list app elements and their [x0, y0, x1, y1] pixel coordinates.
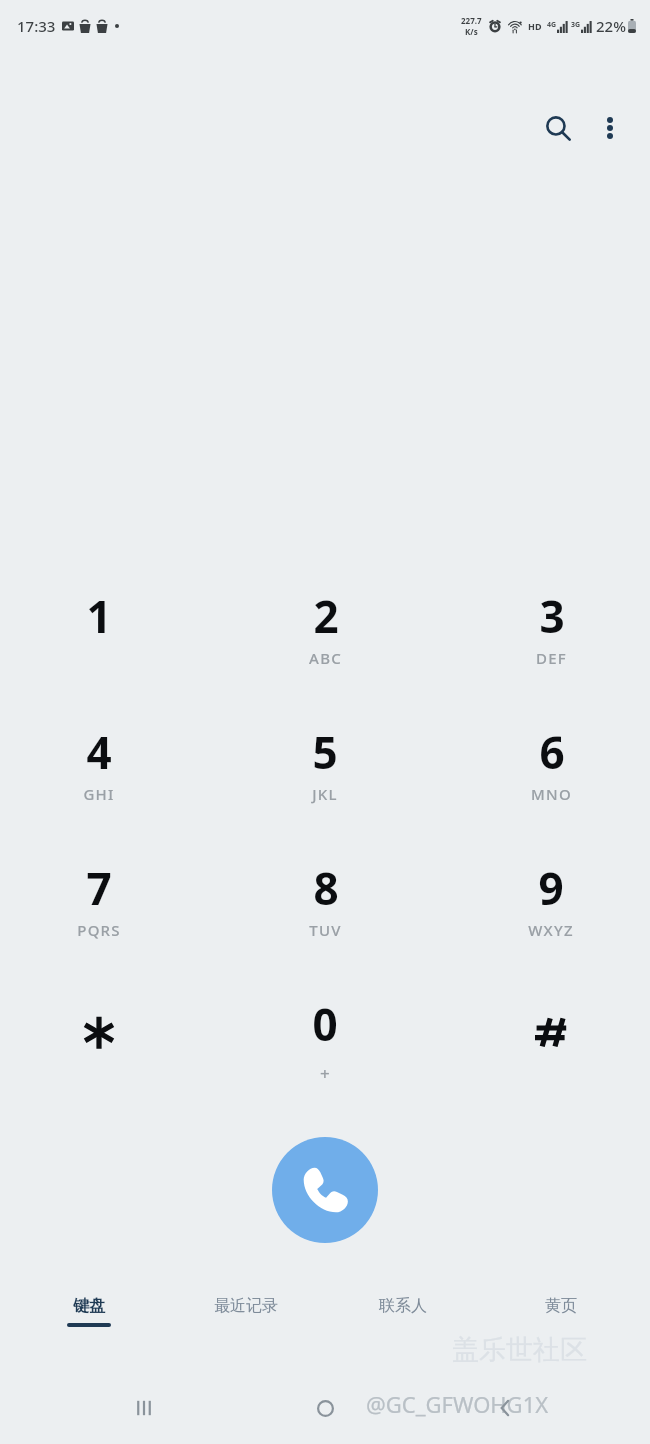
staticText: HD — [528, 20, 542, 32]
staticText: 7 — [86, 858, 112, 918]
button[interactable]: 黄页 — [482, 1296, 640, 1358]
staticText: 1 — [86, 586, 112, 646]
staticText: 5 — [312, 722, 338, 782]
staticText: ABC — [309, 648, 342, 668]
button[interactable] — [486, 994, 616, 1130]
staticText: PQRS — [77, 920, 121, 940]
staticText: K/s — [465, 26, 478, 37]
button[interactable]: 6 — [486, 722, 616, 858]
button[interactable]: 7 — [34, 858, 164, 994]
staticText: JKL — [312, 784, 338, 804]
staticText: WXYZ — [528, 920, 574, 940]
staticText: 0 — [312, 994, 338, 1054]
staticText: 227.7 — [461, 15, 482, 26]
button[interactable]: Recents — [118, 1382, 170, 1434]
button[interactable]: 1 — [34, 586, 164, 722]
button[interactable]: 0 — [260, 994, 390, 1130]
button[interactable]: 8 — [260, 858, 390, 994]
staticText: 盖乐世社区 — [452, 1333, 587, 1367]
staticText: TUV — [309, 920, 342, 940]
button[interactable]: Call — [272, 1137, 378, 1243]
staticText: + — [320, 1062, 331, 1085]
staticText: 3G — [571, 20, 581, 30]
staticText: 3 — [539, 586, 565, 646]
button[interactable]: 5 — [260, 722, 390, 858]
staticText: 9 — [538, 858, 564, 918]
button[interactable]: 键盘 — [10, 1296, 167, 1358]
staticText: 8 — [313, 858, 339, 918]
staticText: 17:33 — [17, 16, 56, 36]
staticText: DEF — [536, 648, 567, 668]
staticText: 22% — [596, 16, 626, 36]
staticText: 联系人 — [379, 1296, 427, 1316]
staticText: 黄页 — [545, 1296, 577, 1316]
staticText: GHI — [83, 784, 115, 804]
button[interactable]: Home — [299, 1382, 351, 1434]
button[interactable]: 4 — [34, 722, 164, 858]
button[interactable]: Back — [480, 1382, 532, 1434]
button[interactable] — [34, 994, 164, 1130]
button[interactable]: More options — [588, 106, 632, 150]
staticText: 4 — [86, 722, 112, 782]
button[interactable]: 最近记录 — [167, 1296, 324, 1358]
staticText: 最近记录 — [214, 1296, 278, 1316]
staticText: @GC_GFWOHG1X — [366, 1389, 549, 1419]
button[interactable]: 2 — [260, 586, 390, 722]
staticText: MNO — [531, 784, 572, 804]
button[interactable]: Search — [534, 104, 582, 152]
staticText: 键盘 — [73, 1296, 105, 1316]
staticText: 6 — [539, 722, 565, 782]
button[interactable]: 联系人 — [324, 1296, 482, 1358]
button[interactable]: 9 — [486, 858, 616, 994]
staticText: 4G — [547, 20, 557, 30]
button[interactable]: 3 — [486, 586, 616, 722]
staticText: 2 — [313, 586, 339, 646]
